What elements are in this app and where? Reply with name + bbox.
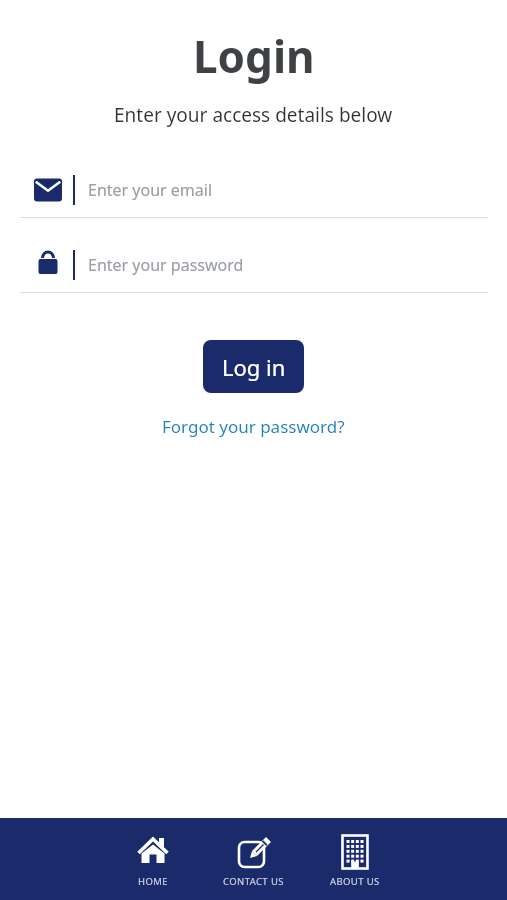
staticText: Forgot your password? (162, 415, 345, 438)
button[interactable]: Enter your email (0, 163, 507, 217)
button[interactable]: CONTACT US (203, 818, 304, 900)
staticText: Enter your email (88, 179, 213, 201)
button[interactable]: Enter your password (0, 238, 507, 292)
button[interactable]: Forgot your password? (162, 415, 345, 438)
button[interactable]: ABOUT US (304, 818, 405, 900)
staticText: Enter your password (88, 254, 244, 276)
staticText: Log in (222, 352, 286, 382)
staticText: CONTACT US (223, 875, 284, 888)
staticText: ABOUT US (330, 875, 380, 888)
staticText: Enter your access details below (114, 102, 393, 128)
button[interactable]: HOME (102, 818, 203, 900)
staticText: HOME (138, 875, 168, 888)
button[interactable]: Log in (203, 340, 304, 393)
staticText: Login (193, 26, 315, 86)
